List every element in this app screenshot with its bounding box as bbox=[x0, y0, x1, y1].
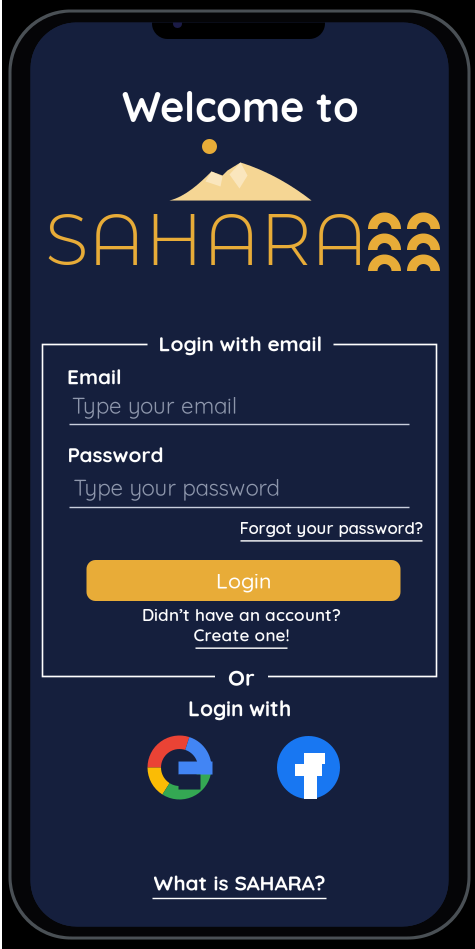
staticText: Login with email bbox=[158, 330, 322, 356]
button[interactable]: Create one! bbox=[193, 624, 289, 649]
staticText: Type your email bbox=[72, 392, 237, 419]
staticText: Or bbox=[228, 664, 255, 691]
staticText: Didn’t have an account? bbox=[142, 604, 341, 625]
staticText: What is SAHARA? bbox=[153, 870, 325, 896]
staticText: Login bbox=[216, 567, 271, 594]
button[interactable]: Sign in with Google bbox=[147, 735, 211, 799]
staticText: Login with bbox=[188, 695, 291, 722]
staticText: Type your password bbox=[73, 474, 279, 501]
button[interactable]: Sign in with Facebook bbox=[277, 736, 340, 799]
staticText: Forgot your password? bbox=[239, 517, 423, 538]
staticText: Create one! bbox=[193, 624, 289, 645]
button[interactable]: What is SAHARA? bbox=[152, 870, 326, 899]
staticText: SAHARA bbox=[45, 196, 368, 283]
staticText: Password bbox=[67, 442, 163, 467]
staticText: Welcome to bbox=[122, 81, 359, 132]
button[interactable]: Forgot your password? bbox=[239, 517, 423, 542]
button[interactable]: Login bbox=[86, 560, 400, 601]
staticText: Email bbox=[67, 364, 122, 389]
